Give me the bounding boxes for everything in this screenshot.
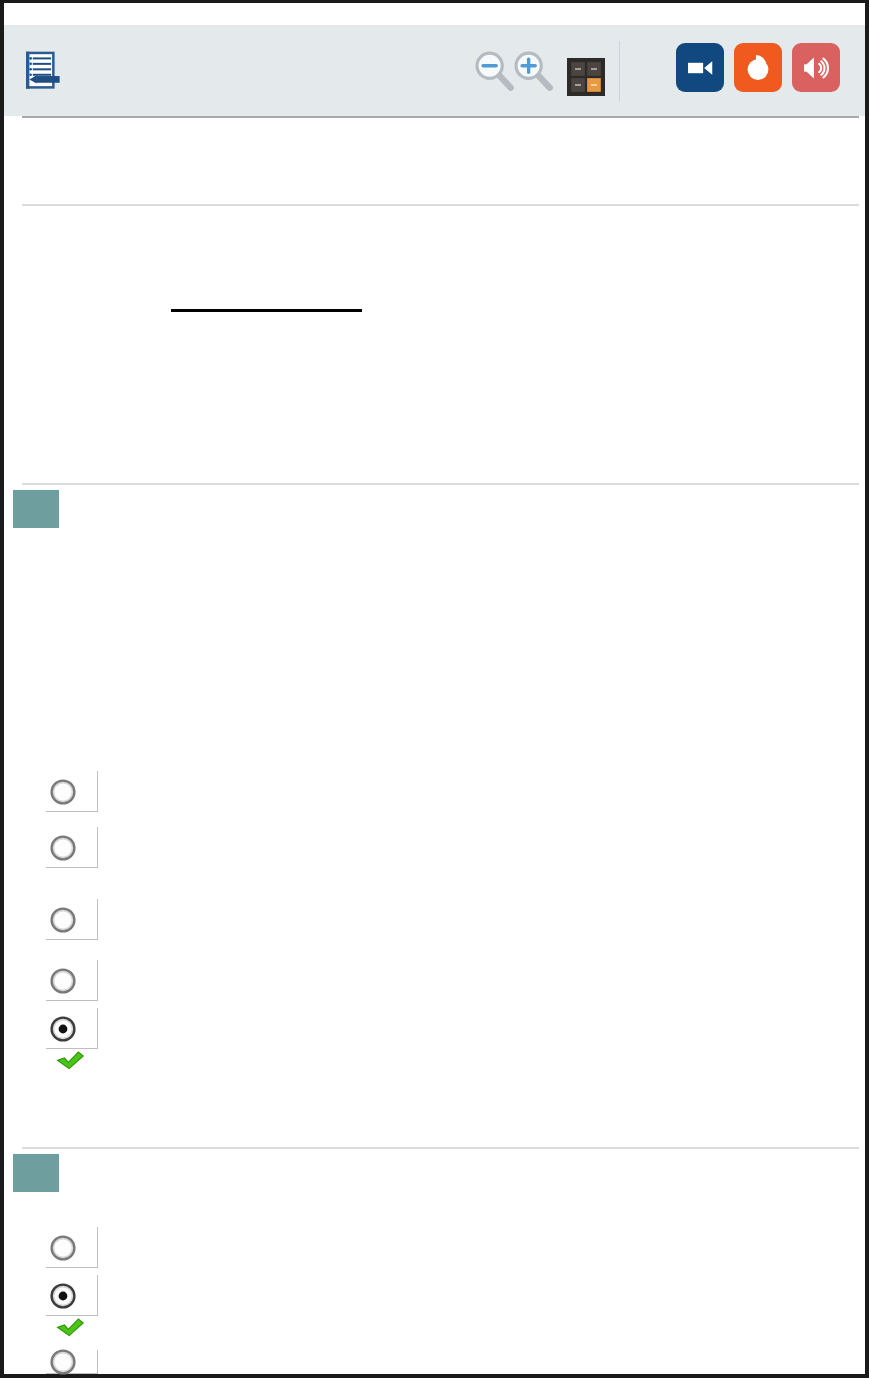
button[interactable]: Zoom in: [509, 47, 555, 93]
button[interactable]: Selected option: [46, 1008, 98, 1049]
button[interactable]: Record video: [676, 43, 724, 92]
button[interactable]: Zoom out: [470, 47, 516, 93]
button[interactable]: Chart: [734, 43, 782, 92]
button[interactable]: Option: [46, 960, 98, 1001]
button[interactable]: Option: [46, 1227, 98, 1268]
button[interactable]: Option: [46, 827, 98, 868]
button[interactable]: Option: [46, 771, 98, 812]
button[interactable]: Option: [46, 899, 98, 940]
button[interactable]: Option: [46, 1350, 98, 1374]
button[interactable]: Selected option: [46, 1275, 98, 1316]
button[interactable]: Sound: [792, 43, 840, 92]
button[interactable]: Notes: [16, 45, 68, 97]
button[interactable]: Layout: [565, 56, 607, 98]
